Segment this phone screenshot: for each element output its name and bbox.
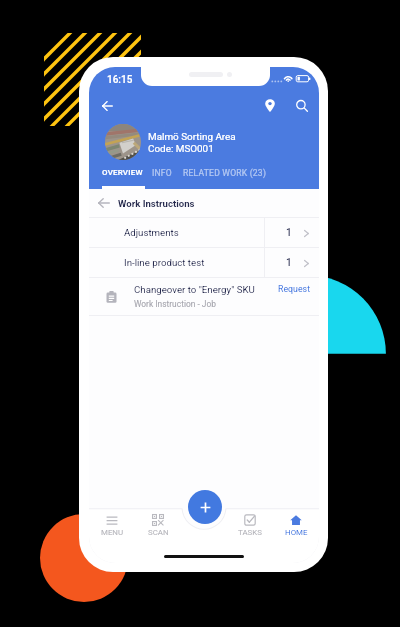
button[interactable]: Search bbox=[287, 91, 316, 120]
button[interactable]: HOME bbox=[273, 506, 319, 552]
button[interactable]: Changeover to "Energy" SKU bbox=[89, 278, 319, 315]
button[interactable]: INFO bbox=[152, 168, 172, 178]
button[interactable]: Back bbox=[93, 91, 122, 120]
staticText: Request bbox=[278, 284, 311, 294]
button[interactable]: Work Instructions bbox=[89, 189, 319, 217]
staticText: RELATED WORK (23) bbox=[183, 168, 267, 178]
staticText: SCAN bbox=[148, 528, 169, 537]
button[interactable]: SCAN bbox=[135, 506, 181, 552]
button[interactable]: Location bbox=[255, 91, 284, 120]
button[interactable]: MENU bbox=[89, 506, 135, 552]
staticText: Work Instruction - Job bbox=[134, 299, 216, 309]
staticText: MENU bbox=[101, 528, 124, 537]
staticText: OVERVIEW bbox=[102, 168, 143, 177]
button[interactable]: Request bbox=[278, 284, 311, 294]
button[interactable]: RELATED WORK (23) bbox=[183, 168, 267, 178]
staticText: INFO bbox=[152, 168, 172, 178]
button[interactable]: Add bbox=[188, 490, 222, 524]
staticText: In-line product test bbox=[124, 257, 205, 268]
button[interactable]: TASKS bbox=[227, 506, 273, 552]
staticText: Changeover to "Energy" SKU bbox=[134, 284, 255, 295]
staticText: Code: MSO001 bbox=[148, 143, 214, 155]
button[interactable]: In-line product test bbox=[89, 248, 319, 277]
staticText: Work Instructions bbox=[118, 198, 195, 209]
staticText: TASKS bbox=[238, 528, 262, 537]
staticText: Adjustments bbox=[124, 227, 179, 238]
button[interactable]: OVERVIEW bbox=[102, 168, 143, 177]
staticText: 1 bbox=[286, 227, 292, 239]
staticText: 16:15 bbox=[107, 74, 133, 86]
staticText: HOME bbox=[285, 528, 308, 537]
button[interactable]: Adjustments bbox=[89, 218, 319, 247]
staticText: 1 bbox=[286, 257, 292, 269]
staticText: Malmö Sorting Area bbox=[148, 131, 236, 143]
